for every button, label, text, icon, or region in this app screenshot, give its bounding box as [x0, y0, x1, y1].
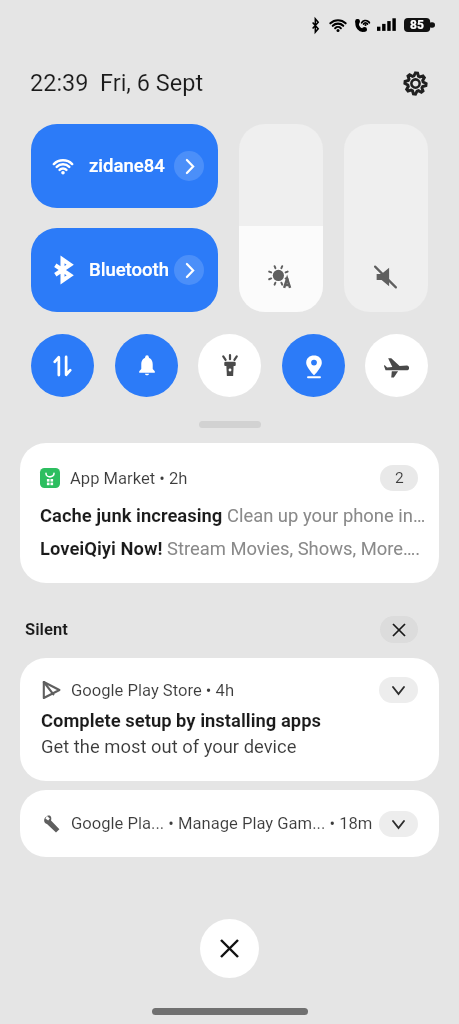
button[interactable]: Google Pla... • Manage Play Gam... • 18m: [20, 790, 439, 857]
button[interactable]: Settings: [397, 65, 433, 101]
staticText: Get the most out of your device: [41, 736, 297, 758]
staticText: Cache junk increasing Clean up your phon…: [40, 505, 435, 527]
button[interactable]: Expand: [379, 677, 418, 703]
staticText: zidane84: [89, 155, 165, 177]
staticText: LoveiQiyi Now! Stream Movies, Shows, Mor…: [40, 538, 435, 560]
button[interactable]: zidane84: [31, 124, 218, 208]
button[interactable]: Flashlight: [198, 334, 261, 397]
button[interactable]: Expand: [379, 811, 418, 837]
button[interactable]: [344, 124, 428, 312]
staticText: App Market • 2h: [70, 469, 188, 488]
staticText: Fri, 6 Sept: [100, 69, 204, 97]
staticText: 85: [410, 18, 424, 32]
button[interactable]: Clear silent notifications: [380, 616, 418, 643]
staticText: Google Pla... • Manage Play Gam... • 18m: [71, 814, 373, 833]
button[interactable]: Location: [282, 334, 345, 397]
button[interactable]: Clear all notifications: [200, 919, 259, 978]
staticText: Silent: [25, 620, 68, 639]
button[interactable]: Bluetooth: [31, 228, 218, 312]
button[interactable]: Google Play Store • 4h: [20, 658, 439, 781]
staticText: Google Play Store • 4h: [71, 681, 235, 700]
staticText: 22:39: [30, 69, 89, 97]
button[interactable]: Mobile data: [31, 334, 94, 397]
staticText: 2: [395, 469, 404, 487]
button[interactable]: [239, 124, 323, 312]
button[interactable]: Notifications: [115, 334, 178, 397]
button[interactable]: App Market • 2h: [20, 443, 439, 583]
button[interactable]: Airplane mode: [365, 334, 428, 397]
staticText: Bluetooth: [89, 259, 170, 281]
staticText: Complete setup by installing apps: [41, 710, 321, 732]
